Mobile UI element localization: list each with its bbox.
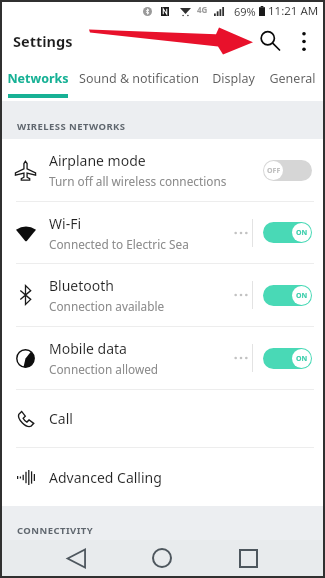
- staticText: Sound & notification: [79, 70, 199, 87]
- button[interactable]: OFF: [263, 160, 312, 181]
- staticText: Mobile data: [49, 339, 127, 358]
- staticText: Turn off all wireless connections: [49, 173, 227, 189]
- button[interactable]: Back: [57, 540, 95, 576]
- button[interactable]: General: [262, 62, 323, 98]
- staticText: Call: [49, 409, 73, 428]
- button[interactable]: Home: [143, 540, 181, 576]
- staticText: WIRELESS NETWORKS: [17, 120, 126, 133]
- staticText: ON: [296, 354, 308, 364]
- button[interactable]: Wi-Fi: [2, 202, 323, 263]
- staticText: Display: [212, 70, 255, 87]
- button[interactable]: ON: [263, 348, 312, 369]
- button[interactable]: Advanced Calling: [2, 448, 323, 506]
- button[interactable]: Search: [250, 21, 290, 61]
- button[interactable]: Bluetooth: [2, 264, 323, 326]
- staticText: Wi-Fi: [49, 214, 82, 233]
- button[interactable]: ON: [263, 285, 312, 306]
- staticText: 11:21 AM: [268, 3, 319, 19]
- button[interactable]: Networks: [2, 62, 74, 98]
- staticText: CONNECTIVITY: [17, 524, 94, 537]
- staticText: ON: [296, 291, 308, 301]
- staticText: Connection available: [49, 298, 165, 314]
- button[interactable]: Mobile data: [2, 327, 323, 389]
- staticText: Airplane mode: [49, 151, 146, 170]
- staticText: 69%: [234, 4, 256, 19]
- staticText: Connected to Electric Sea: [49, 236, 189, 252]
- button[interactable]: Recents: [229, 540, 267, 576]
- button[interactable]: Display: [204, 62, 262, 98]
- button[interactable]: Airplane mode: [2, 139, 323, 201]
- button[interactable]: Sound & notification: [74, 62, 204, 98]
- button[interactable]: ON: [263, 222, 312, 243]
- staticText: General: [269, 70, 316, 87]
- staticText: ON: [296, 228, 308, 238]
- button[interactable]: Call: [2, 390, 323, 447]
- staticText: Advanced Calling: [49, 468, 162, 487]
- staticText: Connection allowed: [49, 361, 159, 377]
- staticText: 4G: [197, 4, 208, 15]
- staticText: OFF: [267, 166, 281, 176]
- button[interactable]: More options: [290, 27, 318, 55]
- staticText: Bluetooth: [49, 276, 114, 295]
- staticText: Networks: [7, 70, 69, 87]
- staticText: Settings: [13, 31, 73, 51]
